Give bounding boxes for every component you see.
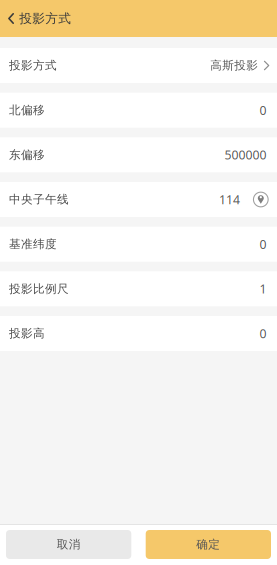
button[interactable]: 投影方式 <box>0 48 277 83</box>
button[interactable]: 投影方式 <box>0 0 277 37</box>
staticText: 114 <box>219 191 240 208</box>
button[interactable]: 中央子午线 <box>0 182 277 217</box>
button[interactable]: 取消 <box>6 530 131 559</box>
staticText: 东偏移 <box>9 147 45 162</box>
staticText: 1 <box>259 280 266 297</box>
button[interactable]: 投影比例尺 <box>0 271 277 306</box>
staticText: 投影比例尺 <box>9 281 69 296</box>
button[interactable]: 投影高 <box>0 316 277 351</box>
staticText: 基准纬度 <box>9 237 57 251</box>
staticText: 高斯投影 <box>210 58 258 73</box>
staticText: 投影高 <box>9 326 45 341</box>
staticText: 0 <box>259 102 266 118</box>
button[interactable]: 确定 <box>146 530 271 559</box>
staticText: 0 <box>259 325 266 342</box>
staticText: 北偏移 <box>9 103 45 117</box>
staticText: 500000 <box>224 146 266 163</box>
button[interactable]: 基准纬度 <box>0 227 277 262</box>
staticText: 中央子午线 <box>9 192 69 207</box>
button[interactable]: 东偏移 <box>0 137 277 172</box>
button[interactable]: 北偏移 <box>0 93 277 128</box>
staticText: 0 <box>259 236 266 252</box>
staticText: 确定 <box>196 537 220 552</box>
staticText: 取消 <box>57 537 81 552</box>
staticText: 投影方式 <box>9 58 57 73</box>
staticText: 投影方式 <box>19 10 71 26</box>
